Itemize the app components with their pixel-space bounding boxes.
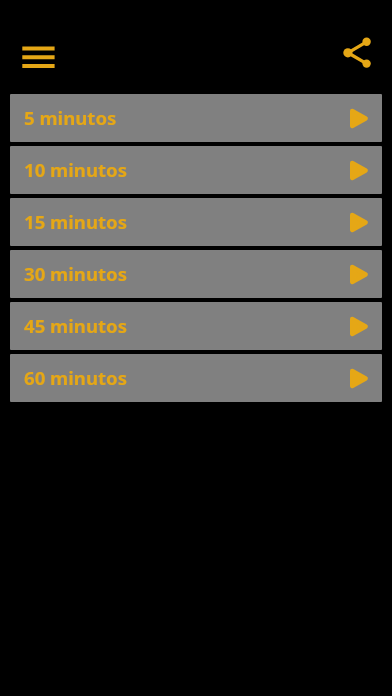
button[interactable]: 30 minutos — [10, 250, 382, 298]
button[interactable]: Open navigation menu — [10, 32, 66, 82]
staticText: 60 minutos — [24, 365, 127, 390]
staticText: 30 minutos — [24, 261, 127, 286]
staticText: 10 minutos — [24, 157, 127, 182]
button[interactable]: 60 minutos — [10, 354, 382, 402]
button[interactable]: 10 minutos — [10, 146, 382, 194]
staticText: 45 minutos — [24, 313, 127, 338]
button[interactable]: 45 minutos — [10, 302, 382, 350]
staticText: 15 minutos — [24, 209, 127, 234]
button[interactable]: Share — [334, 29, 384, 79]
button[interactable]: 5 minutos — [10, 94, 382, 142]
button[interactable]: 15 minutos — [10, 198, 382, 246]
staticText: 5 minutos — [24, 105, 117, 130]
